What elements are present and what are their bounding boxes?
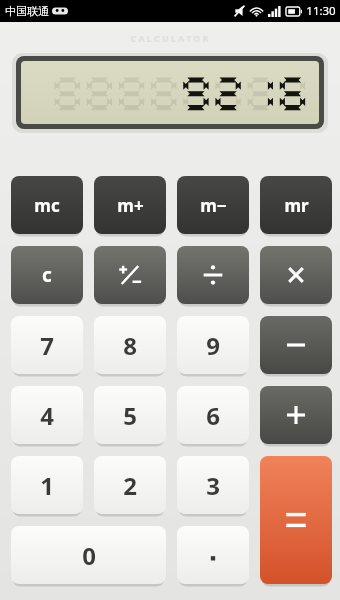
staticText: 9 — [206, 329, 220, 362]
button[interactable]: 0 — [11, 526, 166, 584]
button[interactable]: 9 — [177, 316, 249, 374]
staticText: 5 — [123, 399, 137, 432]
button[interactable]: Plus — [260, 386, 332, 444]
button[interactable]: m− — [177, 176, 249, 234]
button[interactable]: 4 — [11, 386, 83, 444]
staticText: mc — [34, 194, 60, 217]
staticText: 1 — [40, 469, 54, 502]
staticText: CALCULATOR — [130, 32, 211, 44]
staticText: 4 — [40, 399, 54, 432]
button[interactable]: 6 — [177, 386, 249, 444]
button[interactable]: Decimal point — [177, 526, 249, 584]
button[interactable]: c — [11, 246, 83, 304]
staticText: 中国联通 — [5, 4, 49, 18]
staticText: 6 — [206, 399, 220, 432]
button[interactable]: mr — [260, 176, 332, 234]
staticText: 7 — [40, 329, 54, 362]
button[interactable]: Minus — [260, 316, 332, 374]
button[interactable]: 3 — [177, 456, 249, 514]
button[interactable]: 5 — [94, 386, 166, 444]
staticText: 0 — [82, 539, 96, 572]
button[interactable]: Equals — [260, 456, 332, 584]
staticText: m− — [200, 194, 227, 217]
staticText: c — [42, 262, 52, 288]
staticText: m+ — [117, 194, 144, 217]
staticText: 11:30 — [306, 3, 336, 19]
staticText: 8 — [123, 329, 137, 362]
staticText: 2 — [123, 469, 137, 502]
button[interactable]: mc — [11, 176, 83, 234]
button[interactable]: m+ — [94, 176, 166, 234]
button[interactable]: Divide — [177, 246, 249, 304]
staticText: mr — [284, 194, 309, 217]
button[interactable]: 8 — [94, 316, 166, 374]
button[interactable]: Plus minus sign — [94, 246, 166, 304]
button[interactable]: 1 — [11, 456, 83, 514]
button[interactable]: 2 — [94, 456, 166, 514]
button[interactable]: 7 — [11, 316, 83, 374]
button[interactable]: Multiply — [260, 246, 332, 304]
staticText: 3 — [206, 469, 220, 502]
